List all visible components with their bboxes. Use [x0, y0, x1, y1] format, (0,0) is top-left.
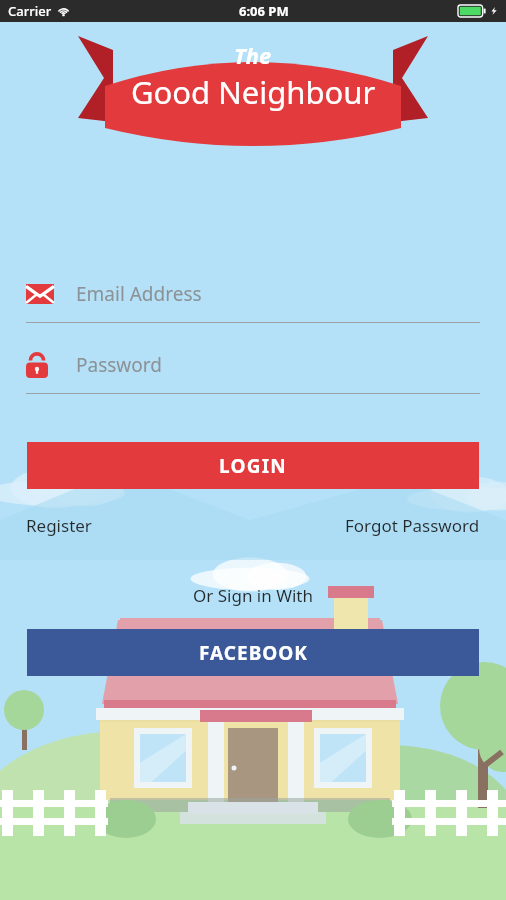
staticText: 6:06 PM [239, 2, 289, 20]
staticText: Email Address [76, 281, 202, 307]
staticText: Register [26, 514, 92, 537]
staticText: Password [76, 352, 162, 378]
staticText: The [234, 40, 272, 70]
staticText: LOGIN [219, 453, 287, 479]
staticText: Or Sign in With [193, 584, 313, 607]
button[interactable]: FACEBOOK [27, 629, 479, 676]
button[interactable]: Forgot Password [345, 511, 480, 540]
staticText: Good Neighbour [131, 71, 376, 113]
button[interactable]: Password [26, 345, 480, 394]
staticText: Forgot Password [345, 514, 480, 537]
button[interactable]: Register [26, 511, 92, 540]
staticText: FACEBOOK [199, 640, 308, 666]
staticText: Carrier [8, 2, 52, 20]
other: Email [26, 284, 54, 304]
button[interactable]: Email [26, 274, 480, 323]
button[interactable]: LOGIN [27, 442, 479, 489]
other: Password [26, 352, 48, 378]
